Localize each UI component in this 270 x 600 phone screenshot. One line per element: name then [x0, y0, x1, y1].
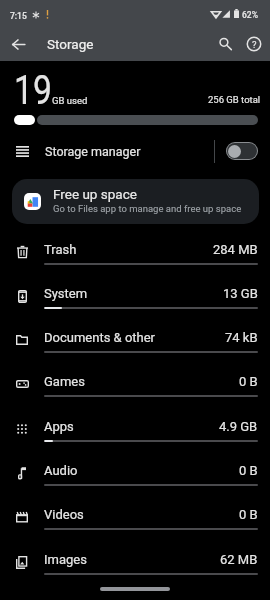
staticText: Documents & other: [44, 330, 156, 345]
staticText: Games: [44, 374, 85, 389]
staticText: 19: [14, 66, 52, 114]
button[interactable]: Apps: [0, 416, 270, 460]
staticText: 4.9 GB: [219, 419, 258, 434]
staticText: 74 kB: [225, 330, 258, 345]
staticText: 62 MB: [220, 552, 258, 567]
staticText: Images: [44, 552, 87, 567]
button[interactable]: Help: [241, 31, 267, 57]
staticText: Videos: [44, 507, 84, 522]
staticText: 256 GB total: [208, 94, 261, 105]
button[interactable]: Trash: [0, 239, 270, 283]
staticText: 284 MB: [213, 242, 258, 257]
button[interactable]: Navigate up: [5, 31, 31, 57]
button[interactable]: Storage manager: [0, 137, 270, 165]
staticText: 7:15: [10, 11, 27, 21]
button[interactable]: Storage manager: [227, 143, 257, 159]
staticText: Storage: [47, 36, 94, 52]
button[interactable]: Free up space: [12, 179, 259, 224]
button[interactable]: System: [0, 283, 270, 327]
staticText: ?: [252, 39, 257, 50]
button[interactable]: Search: [212, 31, 238, 57]
staticText: Free up space: [53, 186, 137, 202]
button[interactable]: Documents & other: [0, 327, 270, 371]
button[interactable]: Images: [0, 549, 270, 593]
staticText: System: [44, 286, 88, 301]
staticText: Storage manager: [45, 144, 141, 159]
staticText: 0 B: [239, 374, 258, 389]
button[interactable]: Audio: [0, 460, 270, 504]
staticText: Audio: [44, 463, 78, 478]
staticText: Go to Files app to manage and free up sp…: [53, 203, 242, 214]
staticText: 13 GB: [223, 286, 258, 301]
staticText: Apps: [44, 419, 74, 434]
staticText: GB used: [52, 95, 88, 106]
staticText: 62%: [242, 10, 258, 20]
button[interactable]: Games: [0, 371, 270, 415]
staticText: 0 B: [239, 463, 258, 478]
staticText: 0 B: [239, 507, 258, 522]
button[interactable]: Videos: [0, 504, 270, 548]
staticText: Trash: [44, 242, 77, 257]
